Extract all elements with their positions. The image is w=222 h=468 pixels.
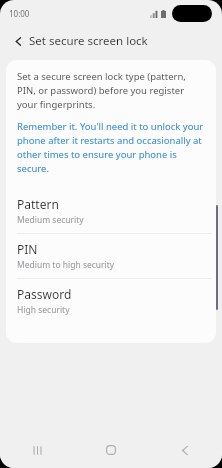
staticText: Set secure screen lock <box>29 33 148 49</box>
button[interactable]: PIN <box>6 234 216 278</box>
staticText: 10:00 <box>9 8 30 19</box>
staticText: Remember it. You'll need it to unlock yo… <box>17 120 205 175</box>
staticText: High security <box>17 304 70 316</box>
button[interactable]: Password <box>6 279 216 323</box>
button[interactable]: Back <box>148 432 222 468</box>
staticText: Set a secure screen lock type (pattern, … <box>17 70 205 111</box>
button[interactable]: Back <box>8 31 28 51</box>
staticText: Password <box>17 286 72 302</box>
staticText: Pattern <box>17 196 59 212</box>
button[interactable]: Pattern <box>6 189 216 233</box>
button[interactable]: Home <box>74 432 148 468</box>
staticText: PIN <box>17 241 38 257</box>
staticText: Medium security <box>17 214 84 226</box>
button[interactable]: Recent apps <box>0 432 74 468</box>
staticText: Medium to high security <box>17 259 115 271</box>
